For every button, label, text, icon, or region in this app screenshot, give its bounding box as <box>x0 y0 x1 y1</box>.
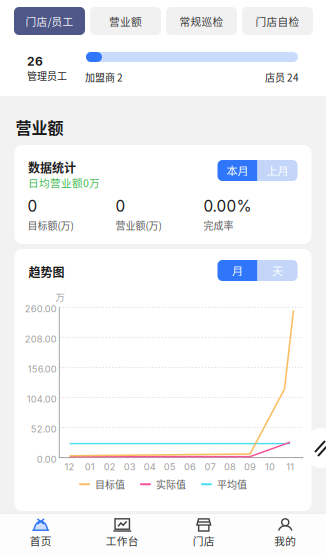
staticText: 上月 <box>266 162 288 179</box>
button[interactable]: 门店 <box>163 513 244 554</box>
button[interactable]: 上月 <box>257 160 297 181</box>
staticText: 0 <box>27 197 37 216</box>
staticText: 0.00% <box>203 197 251 216</box>
button[interactable]: 月 <box>217 260 257 281</box>
staticText: 07 <box>204 461 215 472</box>
staticText: 01 <box>85 461 95 472</box>
staticText: 52.00 <box>31 423 57 435</box>
staticText: 完成率 <box>203 218 233 232</box>
staticText: 趋势图 <box>28 263 64 280</box>
staticText: 营业额(万) <box>115 218 161 232</box>
staticText: 加盟商 2 <box>85 70 123 84</box>
staticText: 10 <box>265 461 275 472</box>
staticText: 门店/员工 <box>25 13 73 29</box>
staticText: 首页 <box>30 533 52 548</box>
staticText: 本月 <box>226 162 248 179</box>
button[interactable]: 工作台 <box>81 513 163 554</box>
staticText: 我的 <box>274 533 296 548</box>
button[interactable]: 天 <box>257 260 297 281</box>
staticText: 万 <box>55 290 64 303</box>
staticText: 06 <box>184 461 196 472</box>
staticText: 日均营业额0万 <box>28 175 100 190</box>
button[interactable]: 常规巡检 <box>166 7 237 35</box>
staticText: 104.00 <box>27 393 57 405</box>
staticText: 0 <box>115 197 125 216</box>
button[interactable]: 门店自检 <box>242 7 313 35</box>
button[interactable]: 我的 <box>244 513 326 554</box>
staticText: 店员 24 <box>265 70 299 84</box>
staticText: 数据统计 <box>28 158 76 176</box>
staticText: 26 <box>27 54 43 68</box>
staticText: 管理员工 <box>27 68 67 83</box>
staticText: 03 <box>124 461 136 472</box>
staticText: 04 <box>144 461 156 472</box>
staticText: 目标值 <box>95 477 125 491</box>
staticText: 12 <box>65 461 75 472</box>
staticText: 208.00 <box>25 333 57 345</box>
staticText: 260.00 <box>25 303 57 315</box>
staticText: 实际值 <box>156 477 186 491</box>
button[interactable]: 快捷入口 <box>302 428 326 468</box>
staticText: 门店自检 <box>255 13 299 29</box>
staticText: 平均值 <box>217 477 247 491</box>
staticText: 常规巡检 <box>179 13 223 29</box>
staticText: 天 <box>272 262 283 279</box>
staticText: 月 <box>232 262 243 279</box>
staticText: 05 <box>164 461 176 472</box>
staticText: 营业额 <box>109 13 142 29</box>
staticText: 11 <box>286 461 294 472</box>
button[interactable]: 首页 <box>0 513 81 554</box>
staticText: 门店 <box>193 533 215 548</box>
staticText: 02 <box>104 461 116 472</box>
button[interactable]: 本月 <box>217 160 257 181</box>
staticText: 08 <box>224 461 236 472</box>
staticText: 工作台 <box>106 533 139 548</box>
button[interactable]: 门店/员工 <box>14 7 85 35</box>
staticText: 目标额(万) <box>27 218 73 232</box>
staticText: 0.00 <box>37 454 57 465</box>
staticText: 156.00 <box>28 363 57 375</box>
button[interactable]: 营业额 <box>90 7 161 35</box>
staticText: 09 <box>244 461 256 472</box>
staticText: 营业额 <box>15 115 63 139</box>
